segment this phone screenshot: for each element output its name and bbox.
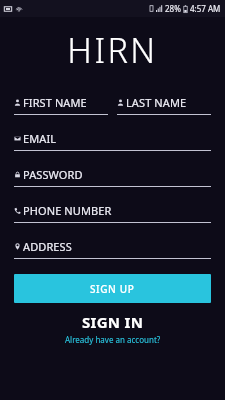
staticText: FIRST NAME [23,95,87,110]
staticText: 4:57 AM [190,3,221,14]
other: EMAIL [14,135,21,142]
button[interactable]: SIGN IN [14,312,211,345]
staticText: 28% [165,3,181,14]
button[interactable]: PASSWORD [14,167,211,187]
staticText: LAST NAME [126,95,187,110]
button[interactable]: ADDRESS [14,239,211,259]
staticText: SIGN UP [90,282,135,296]
staticText: EMAIL [23,131,57,146]
other: PHONE NUMBER [14,207,21,214]
button[interactable]: PHONE NUMBER [14,203,211,223]
staticText: Already have an account? [65,334,161,345]
staticText: ADDRESS [23,239,72,254]
button[interactable]: SIGN UP [14,274,211,303]
staticText: SIGN IN [82,312,144,332]
button[interactable]: LAST NAME [117,95,211,115]
button[interactable]: FIRST NAME [14,95,108,115]
other: ADDRESS [14,243,21,250]
other: FIRST NAME [14,99,21,106]
staticText: PASSWORD [23,167,83,182]
staticText: HIRN [0,27,225,73]
staticText: PHONE NUMBER [23,203,112,218]
other: PASSWORD [14,171,21,178]
other: LAST NAME [117,99,124,106]
button[interactable]: EMAIL [14,131,211,151]
